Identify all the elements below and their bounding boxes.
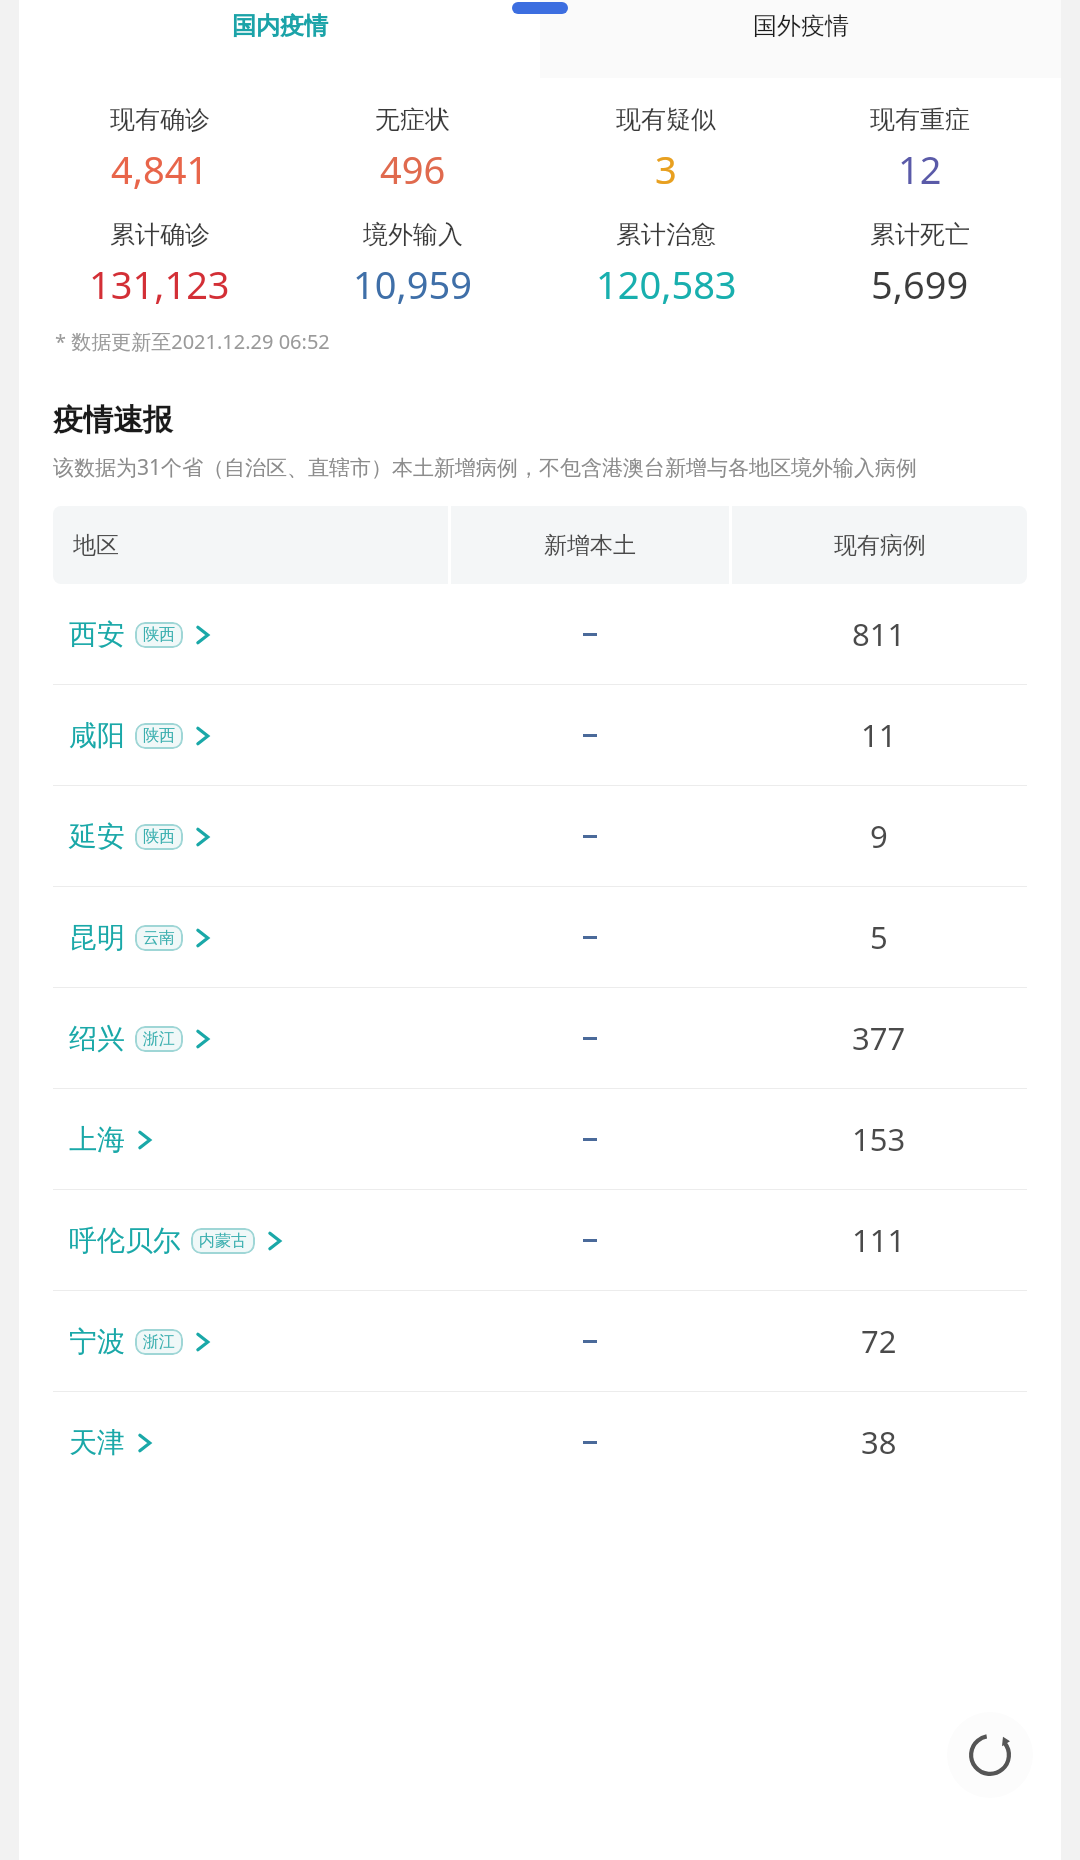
staticText: 现有病例 — [834, 531, 926, 560]
button[interactable]: 国内疫情 — [19, 0, 540, 78]
button[interactable]: 西安 — [19, 584, 1061, 684]
staticText: 10,959 — [353, 258, 472, 310]
button[interactable]: 国外疫情 — [540, 0, 1061, 78]
staticText: 宁波 — [69, 1324, 125, 1359]
staticText: 3 — [655, 143, 677, 195]
button[interactable]: 绍兴 — [19, 988, 1061, 1088]
staticText: 咸阳 — [69, 718, 125, 753]
staticText: 5,699 — [871, 258, 969, 310]
staticText: 496 — [380, 143, 446, 195]
staticText: 累计确诊 — [110, 219, 210, 250]
staticText: 38 — [861, 1421, 897, 1463]
button[interactable]: 昆明 — [19, 887, 1061, 987]
staticText: 上海 — [69, 1122, 125, 1157]
staticText: 西安 — [69, 617, 125, 652]
staticText: 呼伦贝尔 — [69, 1223, 181, 1258]
staticText: 131,123 — [89, 258, 230, 310]
button[interactable]: 咸阳 — [19, 685, 1061, 785]
staticText: 9 — [870, 815, 888, 857]
staticText: 内蒙古 — [199, 1231, 247, 1251]
staticText: 现有重症 — [870, 104, 970, 135]
staticText: 昆明 — [69, 920, 125, 955]
staticText: 120,583 — [596, 258, 737, 310]
staticText: 累计死亡 — [870, 219, 970, 250]
staticText: 疫情速报 — [53, 401, 173, 439]
button[interactable]: 呼伦贝尔 — [19, 1190, 1061, 1290]
staticText: 377 — [852, 1017, 906, 1059]
staticText: 无症状 — [375, 104, 450, 135]
staticText: 5 — [870, 916, 888, 958]
staticText: 累计治愈 — [616, 219, 716, 250]
staticText: 天津 — [69, 1425, 125, 1460]
staticText: 国内疫情 — [232, 11, 328, 41]
button[interactable]: 天津 — [19, 1392, 1061, 1492]
staticText: 新增本土 — [544, 531, 636, 560]
staticText: 11 — [861, 714, 897, 756]
button[interactable]: Refresh — [947, 1712, 1033, 1798]
staticText: 陕西 — [143, 726, 175, 746]
staticText: 绍兴 — [69, 1021, 125, 1056]
staticText: 4,841 — [111, 143, 209, 195]
staticText: 现有疑似 — [616, 104, 716, 135]
staticText: 陕西 — [143, 827, 175, 847]
button[interactable]: 宁波 — [19, 1291, 1061, 1391]
staticText: 国外疫情 — [753, 11, 849, 41]
button[interactable]: 延安 — [19, 786, 1061, 886]
staticText: 延安 — [69, 819, 125, 854]
staticText: 浙江 — [143, 1029, 175, 1049]
staticText: 地区 — [73, 531, 119, 560]
staticText: 72 — [861, 1320, 897, 1362]
staticText: 该数据为31个省（自治区、直辖市）本土新增病例，不包含港澳台新增与各地区境外输入… — [53, 453, 918, 482]
staticText: * 数据更新至2021.12.29 06:52 — [55, 328, 330, 355]
staticText: 陕西 — [143, 625, 175, 645]
staticText: 153 — [852, 1118, 906, 1160]
staticText: 12 — [898, 143, 942, 195]
staticText: 境外输入 — [363, 219, 463, 250]
button[interactable]: 上海 — [19, 1089, 1061, 1189]
staticText: 浙江 — [143, 1332, 175, 1352]
staticText: 云南 — [143, 928, 175, 948]
staticText: 811 — [852, 613, 906, 655]
staticText: 现有确诊 — [110, 104, 210, 135]
staticText: 111 — [852, 1219, 906, 1261]
